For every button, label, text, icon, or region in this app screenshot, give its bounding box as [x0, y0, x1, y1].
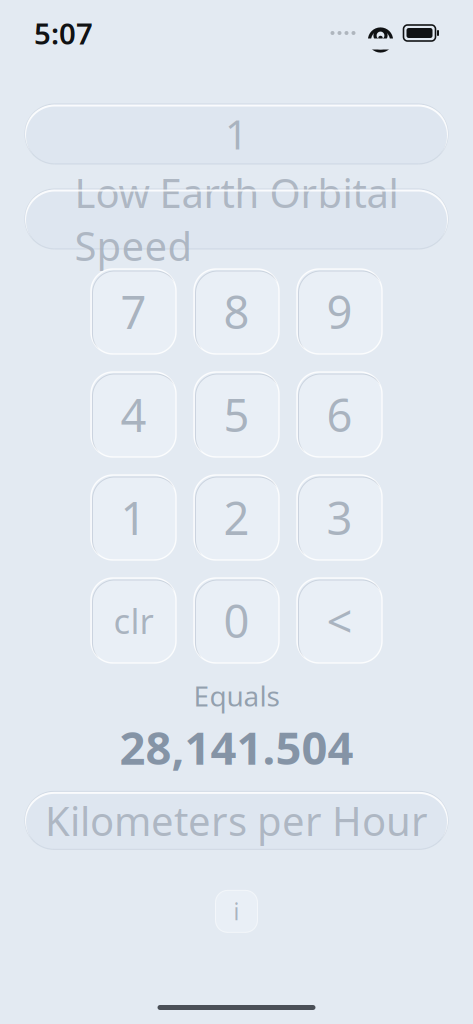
staticText: 2 [223, 487, 249, 548]
button[interactable]: 5 [194, 372, 279, 457]
button[interactable]: Kilometers per Hour [25, 791, 448, 849]
button[interactable]: clr [91, 578, 176, 663]
staticText: 28,141.504 [119, 717, 353, 777]
button[interactable]: 9 [297, 269, 382, 354]
button[interactable]: 7 [91, 269, 176, 354]
staticText: 9 [326, 281, 352, 342]
staticText: 6 [326, 384, 352, 445]
staticText: 1 [225, 107, 248, 160]
button[interactable]: 2 [194, 475, 279, 560]
staticText: 5 [223, 384, 249, 445]
staticText: 5:07 [34, 13, 93, 52]
button[interactable]: 1 [25, 104, 448, 164]
staticText: Equals [193, 677, 279, 714]
staticText: 0 [223, 590, 249, 651]
staticText: Low Earth Orbital Speed [74, 166, 398, 272]
button[interactable]: Low Earth Orbital Speed [25, 189, 448, 249]
button[interactable]: 6 [297, 372, 382, 457]
staticText: 7 [120, 281, 146, 342]
button[interactable]: 8 [194, 269, 279, 354]
staticText: 1 [120, 487, 146, 548]
staticText: 3 [326, 487, 352, 548]
button[interactable]: < [297, 578, 382, 663]
staticText: < [326, 590, 352, 651]
button[interactable]: 4 [91, 372, 176, 457]
button[interactable]: 0 [194, 578, 279, 663]
staticText: i [233, 896, 239, 926]
staticText: 8 [223, 281, 249, 342]
button[interactable]: Information [215, 890, 257, 932]
button[interactable]: 1 [91, 475, 176, 560]
button[interactable]: 3 [297, 475, 382, 560]
staticText: clr [113, 597, 153, 643]
staticText: Kilometers per Hour [45, 794, 428, 847]
staticText: 4 [120, 384, 146, 445]
